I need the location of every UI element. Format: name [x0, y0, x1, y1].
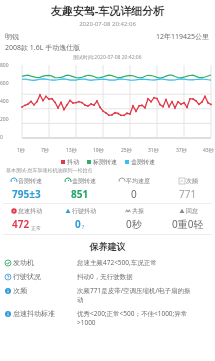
staticText: 次频: [186, 177, 198, 185]
staticText: 发动机: [13, 258, 34, 267]
button[interactable]: GaugeG: [53, 177, 107, 201]
staticText: 抖动0，无行驶数据: [77, 272, 210, 281]
staticText: 次频771是皮带/空调压缩机/电子扇的振 动: [77, 286, 210, 304]
button[interactable]: Chart: [161, 177, 215, 201]
staticText: 行驶状况: [13, 272, 41, 281]
other: Tri: [65, 208, 71, 214]
button[interactable]: Gauge: [0, 177, 53, 201]
staticText: 测试时间:2020-07-08 20:42:06: [73, 54, 142, 61]
other: Gauge: [11, 178, 17, 184]
other: Check: [5, 260, 11, 266]
other: Res: [125, 208, 131, 214]
staticText: 7秒: [41, 147, 49, 154]
staticText: 0秒: [126, 217, 142, 231]
staticText: 0: [131, 187, 137, 201]
staticText: 明锐: [5, 32, 19, 41]
staticText: 800: [0, 62, 18, 69]
button[interactable]: Tri: [161, 207, 215, 231]
other: GaugeG: [65, 178, 71, 184]
staticText: 盒测转速: [72, 177, 96, 185]
staticText: 600: [0, 80, 18, 87]
staticText: 友趣安驾-车况详细分析: [0, 3, 215, 18]
button[interactable]: Warn: [0, 207, 53, 231]
staticText: 31秒: [148, 147, 159, 154]
staticText: 优秀<200;正常<500；不佳<1000;异常 >1000: [77, 309, 210, 327]
staticText: 37秒: [176, 147, 187, 154]
staticText: 1秒: [17, 147, 25, 154]
button[interactable]: Question: [0, 272, 215, 281]
staticText: 200: [0, 116, 18, 123]
other: Info: [5, 288, 11, 294]
staticText: 771: [179, 187, 197, 201]
staticText: 400: [0, 98, 18, 105]
staticText: 标测转速: [93, 158, 117, 166]
staticText: 怠速抖动标准: [13, 309, 55, 318]
staticText: 平均速度: [126, 177, 150, 185]
staticText: 0重0轻: [172, 217, 204, 231]
other: Speed: [119, 178, 125, 184]
staticText: 回怠: [186, 207, 198, 215]
staticText: 472: [12, 217, 30, 231]
other: Question: [5, 274, 11, 280]
staticText: 2020-07-08 20:42:06: [0, 20, 215, 28]
staticText: 音测转速: [18, 177, 42, 185]
staticText: 795±3: [12, 187, 41, 201]
staticText: 行驶抖动: [72, 207, 96, 215]
staticText: 19秒: [93, 147, 104, 154]
staticText: 共振: [132, 207, 144, 215]
staticText: ?: [82, 224, 85, 231]
staticText: 43秒: [203, 147, 214, 154]
staticText: 13秒: [66, 147, 77, 154]
button[interactable]: Res: [107, 207, 161, 231]
staticText: 怠速抖动: [18, 207, 42, 215]
staticText: 0: [0, 134, 18, 141]
staticText: 12年119425公里: [156, 32, 210, 42]
staticText: 保养建议: [0, 241, 215, 252]
staticText: 抖动: [67, 158, 79, 166]
staticText: 基本测试-怠车加速松机油踩到一松抬点: [6, 167, 93, 174]
other: Tri: [179, 208, 185, 214]
staticText: 正常: [31, 225, 41, 231]
staticText: 851: [71, 187, 89, 201]
other: Info: [5, 311, 11, 317]
staticText: 次频: [13, 286, 27, 295]
button[interactable]: Speed: [107, 177, 161, 201]
other: Warn: [11, 208, 17, 214]
staticText: 0: [75, 217, 81, 231]
button[interactable]: Check: [0, 258, 215, 267]
button[interactable]: Info: [0, 286, 215, 304]
staticText: 盒测转速: [131, 158, 155, 166]
other: Chart: [179, 178, 185, 184]
button[interactable]: Tri: [53, 207, 107, 231]
staticText: 25秒: [121, 147, 132, 154]
staticText: 怠速主频472<500,车况正常: [77, 258, 210, 267]
button[interactable]: Info: [0, 309, 215, 327]
staticText: 2008款 1.6L 手动逸仕版: [5, 43, 81, 53]
